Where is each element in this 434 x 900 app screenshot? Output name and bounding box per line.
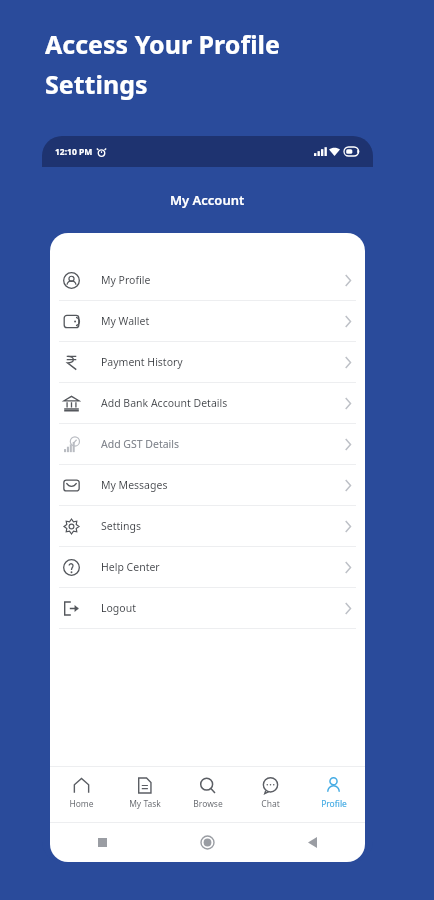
staticText: Home [69, 798, 94, 810]
button[interactable]: Settings [50, 506, 365, 546]
button[interactable]: Add Bank Account Details [50, 383, 365, 423]
staticText: Add Bank Account Details [101, 396, 228, 410]
button[interactable]: Profile [302, 775, 365, 812]
staticText: Chat [261, 798, 280, 810]
button[interactable]: My Wallet [50, 301, 365, 341]
button[interactable]: Help Center [50, 547, 365, 587]
button[interactable]: Recent apps [50, 838, 155, 847]
staticText: My Account [170, 191, 245, 209]
button[interactable]: Logout [50, 588, 365, 628]
button[interactable]: Back [260, 837, 365, 848]
staticText: 12:10 PM [55, 146, 93, 158]
button[interactable]: Home [50, 775, 113, 812]
staticText: Logout [101, 601, 136, 615]
staticText: My Wallet [101, 314, 150, 328]
staticText: Help Center [101, 560, 160, 574]
staticText: Settings [45, 67, 148, 101]
button[interactable]: My Profile [50, 260, 365, 300]
staticText: Profile [321, 798, 347, 810]
button[interactable]: Home [155, 836, 260, 849]
staticText: My Messages [101, 478, 168, 492]
button[interactable]: My Messages [50, 465, 365, 505]
staticText: My Task [129, 798, 161, 810]
staticText: Access Your Profile [45, 27, 280, 61]
staticText: My Profile [101, 273, 151, 287]
staticText: Payment History [101, 355, 183, 369]
staticText: Add GST Details [101, 437, 180, 451]
button[interactable]: Add GST Details [50, 424, 365, 464]
staticText: Browse [193, 798, 223, 810]
staticText: Settings [101, 519, 141, 533]
button[interactable]: My Task [113, 775, 176, 812]
button[interactable]: Payment History [50, 342, 365, 382]
button[interactable]: Chat [239, 775, 302, 812]
button[interactable]: Browse [176, 775, 239, 812]
